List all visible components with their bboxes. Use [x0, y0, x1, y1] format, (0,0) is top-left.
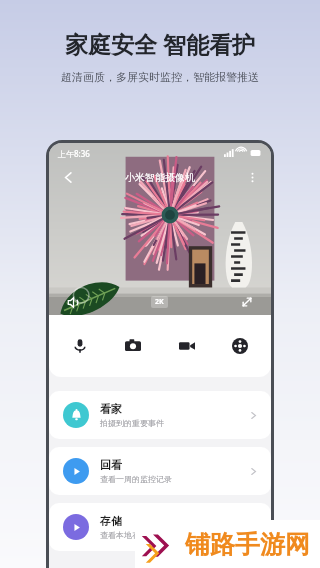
staticText: 回看	[100, 458, 122, 472]
button[interactable]: 更多	[241, 166, 263, 188]
button[interactable]: 拍照	[118, 331, 148, 361]
button[interactable]: 方向控制	[225, 331, 255, 361]
button[interactable]: 全屏	[237, 292, 257, 312]
staticText: 铺路手游网	[185, 529, 310, 560]
button[interactable]: 2K	[155, 297, 164, 307]
staticText: 小米智能摄像机	[125, 171, 195, 184]
staticText: 看家	[100, 402, 122, 416]
staticText: 上午8:36	[58, 148, 90, 159]
button[interactable]: 麦克风	[65, 331, 95, 361]
button[interactable]: 存储	[49, 503, 271, 551]
staticText: 查看本地存储	[100, 530, 148, 540]
button[interactable]: 静音	[63, 292, 83, 312]
staticText: 查看一周的监控记录	[100, 474, 172, 484]
staticText: 超清画质，多屏实时监控，智能报警推送	[61, 70, 259, 84]
button[interactable]: 回看	[49, 447, 271, 495]
button[interactable]: 看家	[49, 391, 271, 439]
staticText: 拍摄到的重要事件	[100, 418, 164, 428]
button[interactable]: 返回	[57, 166, 79, 188]
button[interactable]: 铺路手游网	[135, 520, 320, 568]
button[interactable]: 录像	[172, 331, 202, 361]
staticText: 2K	[155, 297, 164, 307]
staticText: 家庭安全 智能看护	[65, 28, 255, 59]
staticText: 存储	[100, 514, 122, 528]
